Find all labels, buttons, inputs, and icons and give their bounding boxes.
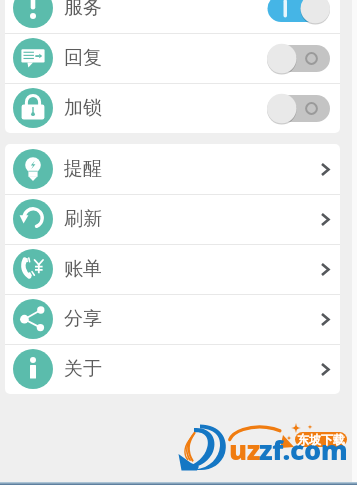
staticText: 关于	[64, 357, 102, 381]
button[interactable]: 提醒	[5, 144, 340, 194]
staticText: 分享	[64, 307, 102, 331]
staticText: 回复	[64, 46, 102, 70]
staticText: zf.com	[259, 431, 348, 468]
other: On	[267, 0, 330, 24]
button[interactable]: 账单	[5, 244, 340, 294]
button[interactable]: 分享	[5, 294, 340, 344]
button[interactable]: 回复	[5, 33, 340, 83]
staticText: uz	[229, 431, 260, 468]
other: Off	[267, 93, 330, 124]
button[interactable]: 关于	[5, 344, 340, 394]
staticText: 刷新	[64, 207, 102, 231]
staticText: 账单	[64, 257, 102, 281]
button[interactable]: 服务	[5, 0, 340, 33]
button[interactable]: 加锁	[5, 83, 340, 133]
staticText: 服务	[64, 0, 102, 20]
staticText: 加锁	[64, 96, 102, 120]
staticText: 东坡下载	[297, 432, 345, 447]
button[interactable]: 刷新	[5, 194, 340, 244]
staticText: 提醒	[64, 157, 102, 181]
other: Off	[267, 43, 330, 74]
